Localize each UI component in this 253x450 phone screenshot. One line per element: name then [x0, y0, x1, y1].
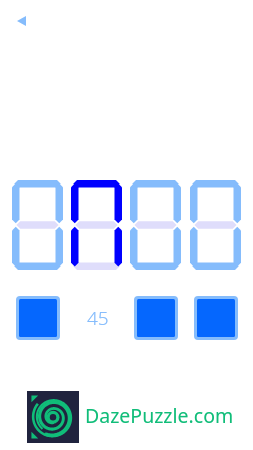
button[interactable] [16, 296, 60, 340]
button[interactable] [71, 180, 122, 270]
button[interactable] [134, 296, 178, 340]
staticText: DazePuzzle.com [85, 402, 234, 429]
button[interactable] [130, 180, 181, 270]
button[interactable] [12, 180, 63, 270]
button[interactable] [190, 180, 241, 270]
button[interactable]: DazePuzzle logo [27, 391, 79, 443]
button[interactable] [194, 296, 238, 340]
staticText: 45 [87, 305, 109, 331]
button[interactable]: Back [6, 6, 36, 36]
